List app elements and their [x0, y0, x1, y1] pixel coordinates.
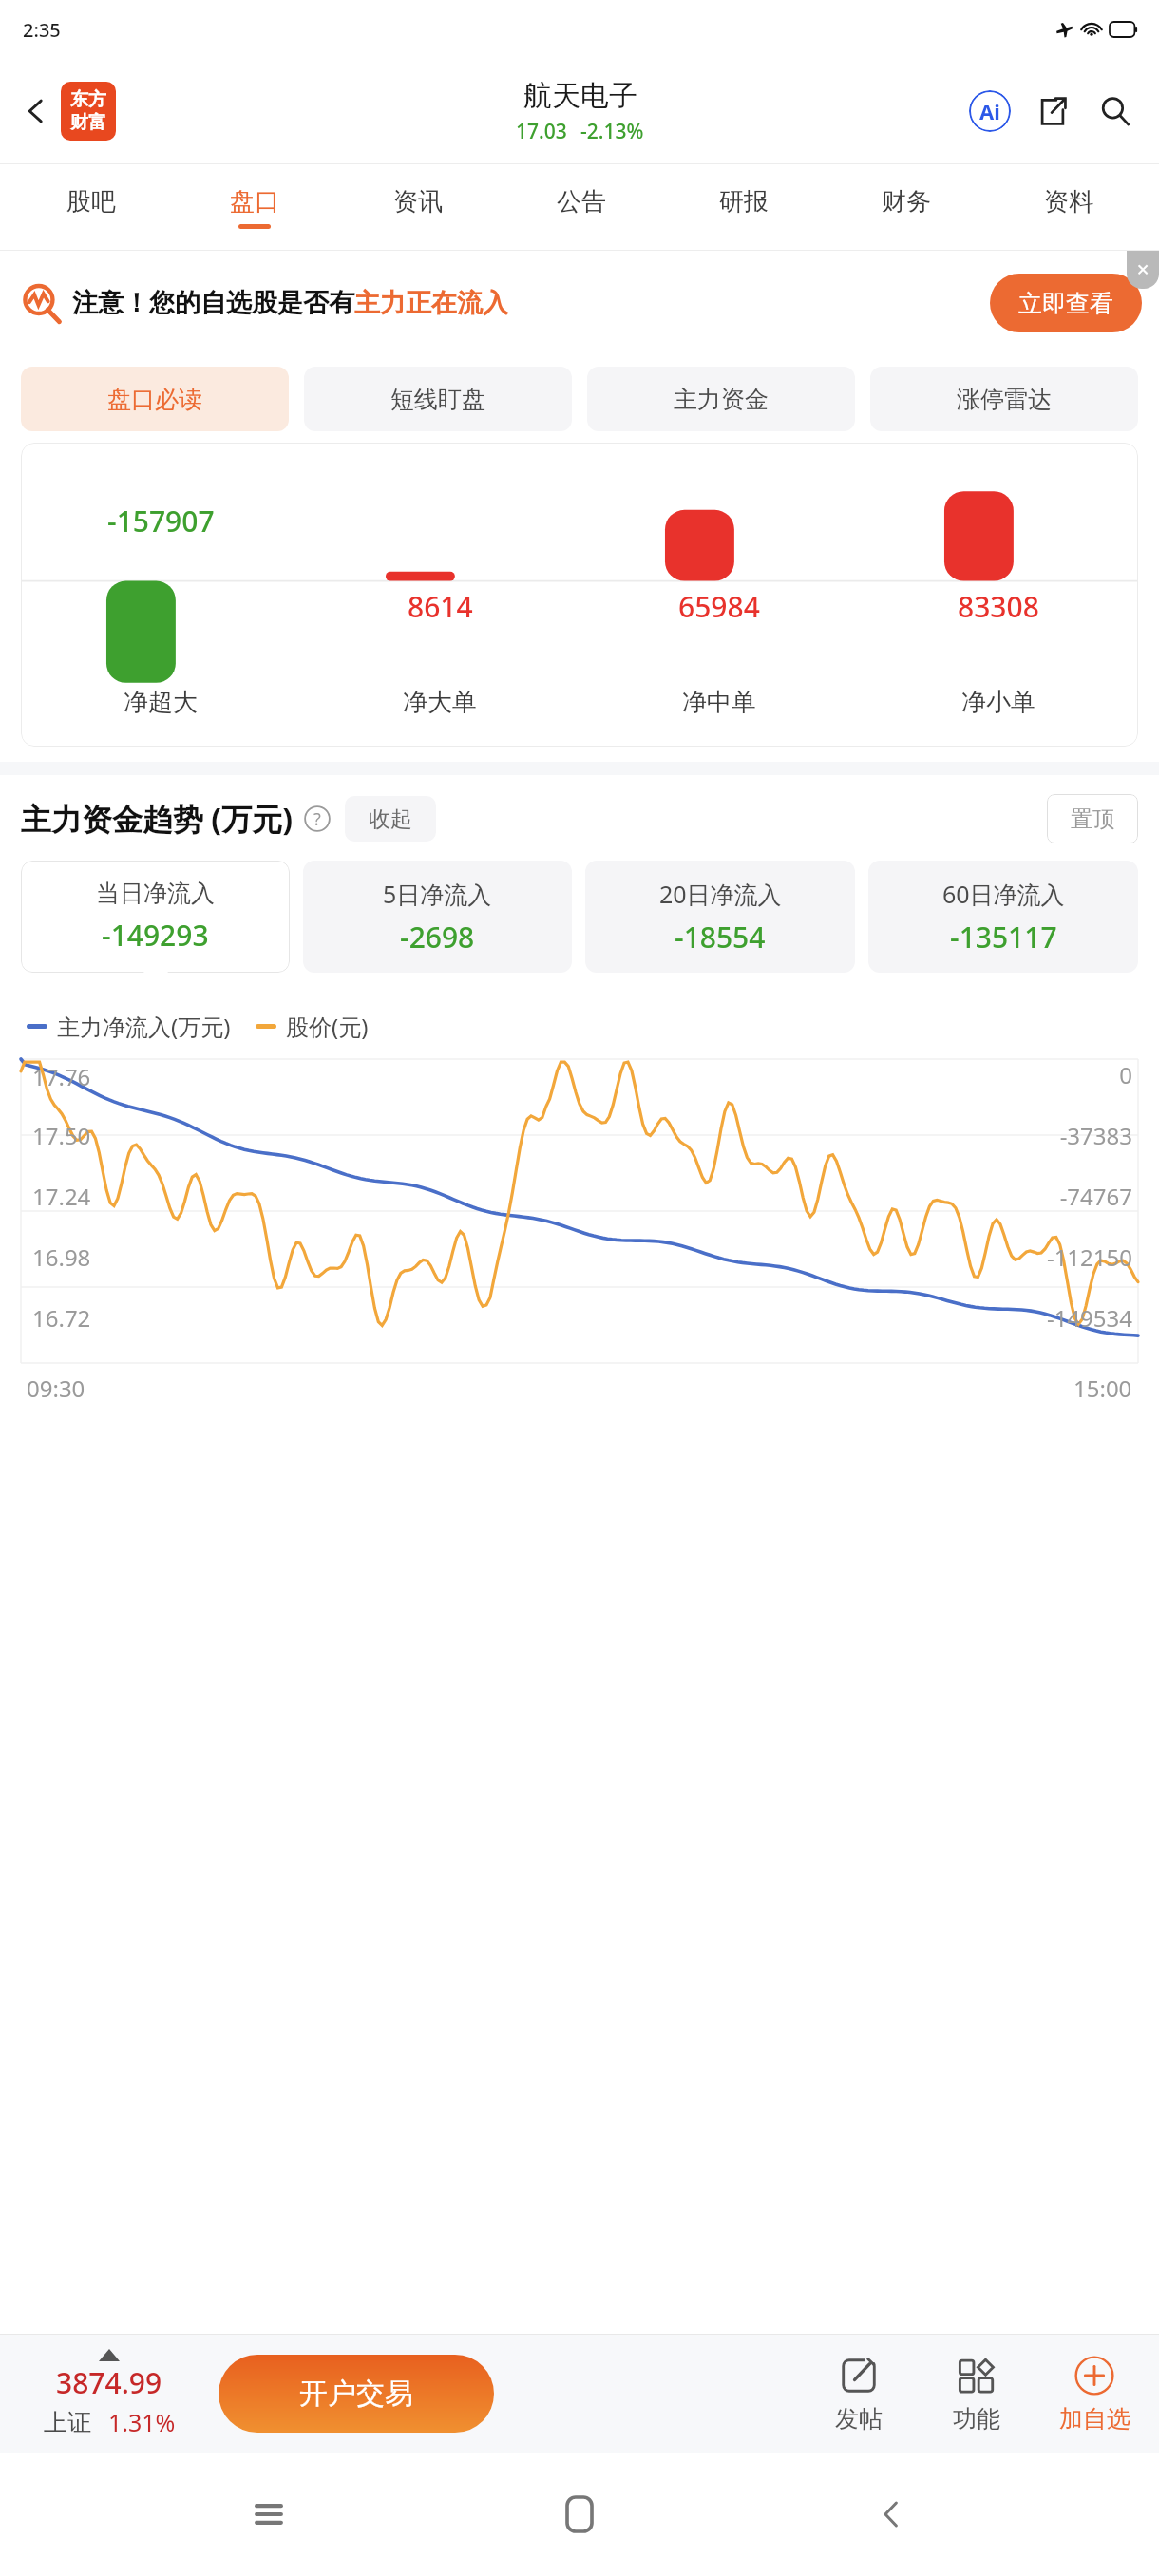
button[interactable]: 盘口	[173, 164, 336, 250]
staticText: 17.50	[32, 1120, 91, 1151]
staticText: 开户交易	[299, 2376, 413, 2412]
staticText: 公告	[557, 186, 606, 218]
button[interactable]: 60日净流入	[868, 861, 1138, 973]
staticText: -74767	[1059, 1181, 1132, 1212]
staticText: 短线盯盘	[390, 385, 485, 414]
button[interactable]: 财务	[825, 164, 987, 250]
button[interactable]: 5日净流入	[303, 861, 572, 973]
button[interactable]: 发帖	[800, 2335, 918, 2453]
staticText: 功能	[953, 2404, 1000, 2434]
staticText: 涨停雷达	[957, 385, 1052, 414]
button[interactable]: Close	[1127, 251, 1159, 289]
button[interactable]: 置顶	[1047, 794, 1138, 843]
button[interactable]: 资讯	[336, 164, 500, 250]
button[interactable]: 盘口必读	[21, 367, 289, 431]
staticText: 83308	[958, 587, 1039, 626]
staticText: 65984	[678, 587, 760, 626]
staticText: 净小单	[961, 687, 1035, 718]
staticText: -2698	[400, 918, 475, 957]
staticText: 上证	[44, 2408, 91, 2437]
staticText: 15:00	[1073, 1373, 1132, 1404]
staticText: 盘口	[230, 186, 279, 218]
button[interactable]: 股吧	[9, 164, 173, 250]
staticText: 5日净流入	[383, 878, 492, 910]
button[interactable]: Help	[303, 805, 332, 833]
staticText: 财务	[882, 186, 931, 218]
staticText: -37383	[1059, 1120, 1132, 1151]
button[interactable]: Back	[848, 2472, 934, 2557]
button[interactable]: 功能	[918, 2335, 1035, 2453]
button[interactable]: 当日净流入	[21, 861, 290, 973]
staticText: 置顶	[1071, 805, 1114, 833]
button[interactable]: AI	[963, 85, 1016, 138]
staticText: 净大单	[403, 687, 477, 718]
button[interactable]: 立即查看	[990, 274, 1142, 332]
staticText: 净中单	[682, 687, 756, 718]
staticText: 资料	[1044, 186, 1093, 218]
staticText: 资讯	[393, 186, 443, 218]
button[interactable]: 研报	[662, 164, 825, 250]
button[interactable]: 加自选	[1035, 2335, 1153, 2453]
staticText: 16.98	[32, 1241, 91, 1273]
staticText: -18554	[674, 918, 766, 957]
staticText: 3874.99	[56, 2363, 162, 2402]
staticText: 1.31%	[108, 2406, 176, 2438]
staticText: 17.24	[32, 1181, 91, 1212]
staticText: 0	[1119, 1059, 1132, 1090]
staticText: 8614	[408, 587, 473, 626]
staticText: 主力净流入(万元)	[57, 1011, 231, 1042]
staticText: 航天电子	[523, 78, 637, 114]
staticText: 60日净流入	[942, 878, 1065, 910]
staticText: 净超大	[123, 687, 198, 718]
staticText: -157907	[107, 502, 215, 540]
staticText: 主力资金趋势 (万元)	[21, 798, 294, 840]
button[interactable]: 短线盯盘	[304, 367, 572, 431]
staticText: 收起	[369, 805, 412, 833]
button[interactable]: Home	[537, 2472, 622, 2557]
staticText: -149293	[102, 916, 209, 955]
button[interactable]: 3874.99	[0, 2335, 218, 2453]
staticText: 17.76	[32, 1061, 91, 1092]
staticText: 17.03	[516, 118, 567, 145]
button[interactable]: 涨停雷达	[870, 367, 1138, 431]
staticText: 财富	[70, 111, 106, 134]
button[interactable]: 公告	[500, 164, 662, 250]
staticText: 注意！您的自选股是否有	[72, 287, 354, 319]
staticText: -112150	[1046, 1241, 1132, 1273]
button[interactable]: 主力资金	[587, 367, 855, 431]
staticText: 研报	[719, 186, 769, 218]
staticText: 2:35	[23, 17, 61, 43]
staticText: 16.72	[32, 1302, 91, 1334]
staticText: -135117	[950, 918, 1057, 957]
staticText: -149534	[1046, 1302, 1132, 1334]
button[interactable]: Recents	[226, 2472, 312, 2557]
button[interactable]: East Money	[61, 82, 116, 141]
button[interactable]: Back	[11, 86, 61, 136]
staticText: 主力资金	[674, 385, 769, 414]
staticText: -2.13%	[580, 118, 644, 145]
staticText: 立即查看	[1018, 289, 1113, 318]
button[interactable]: 注意！您的自选股是否有	[21, 251, 1142, 355]
button[interactable]: Search	[1089, 85, 1142, 138]
button[interactable]: Share	[1026, 85, 1079, 138]
staticText: 加自选	[1059, 2404, 1130, 2434]
staticText: 发帖	[835, 2404, 883, 2434]
staticText: ✕	[1136, 260, 1150, 279]
button[interactable]: 收起	[345, 796, 436, 842]
staticText: 当日净流入	[96, 879, 215, 908]
staticText: ?	[313, 807, 321, 831]
staticText: 20日净流入	[659, 878, 782, 910]
button[interactable]: 20日净流入	[585, 861, 855, 973]
staticText: 股吧	[66, 186, 116, 218]
staticText: 09:30	[27, 1373, 85, 1404]
button[interactable]: 开户交易	[218, 2355, 494, 2433]
staticText: 盘口必读	[107, 385, 202, 414]
staticText: Ai	[979, 97, 1000, 125]
staticText: 股价(元)	[286, 1011, 369, 1042]
button[interactable]: 资料	[987, 164, 1149, 250]
staticText: 主力正在流入	[354, 287, 508, 319]
staticText: 东方	[70, 88, 106, 111]
